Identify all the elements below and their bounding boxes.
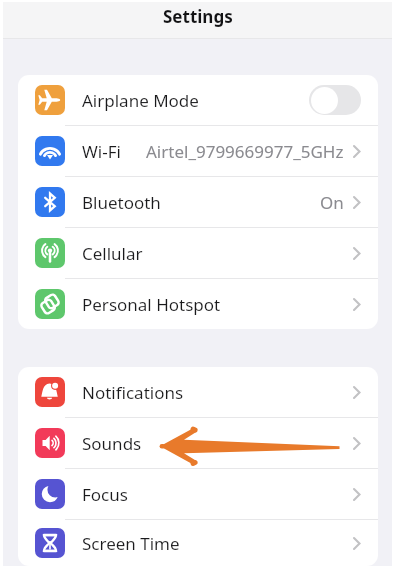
staticText: Personal Hotspot	[82, 293, 221, 316]
button[interactable]: Cellular	[18, 228, 378, 278]
staticText: Wi-Fi	[82, 140, 121, 163]
staticText: Sounds	[82, 432, 142, 455]
button[interactable]: Screen Time	[18, 520, 378, 566]
button[interactable]: Personal Hotspot	[18, 279, 378, 329]
staticText: Notifications	[82, 381, 184, 404]
staticText: Airtel_9799669977_5GHz	[146, 140, 344, 163]
staticText: On	[320, 191, 344, 214]
button[interactable]: Focus	[18, 469, 378, 519]
staticText: Airplane Mode	[82, 89, 199, 112]
staticText: Focus	[82, 483, 128, 506]
staticText: Bluetooth	[82, 191, 161, 214]
button[interactable]: Sounds	[18, 418, 378, 468]
button[interactable]: Notifications	[18, 367, 378, 417]
staticText: Screen Time	[82, 532, 180, 555]
button[interactable]: Wi-Fi	[18, 126, 378, 176]
staticText: Cellular	[82, 242, 143, 265]
button[interactable]: Bluetooth	[18, 177, 378, 227]
button[interactable]: Airplane Mode toggle	[309, 85, 361, 115]
button[interactable]: Airplane Mode	[18, 75, 378, 125]
staticText: Settings	[163, 5, 233, 28]
